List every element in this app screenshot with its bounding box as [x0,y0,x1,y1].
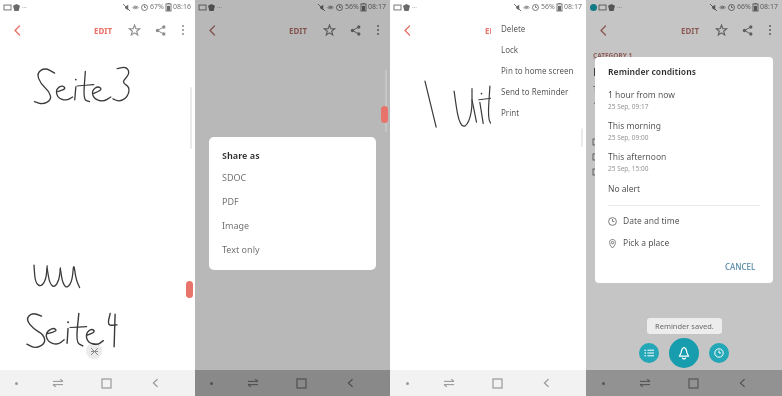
button[interactable]: EDIT [90,21,117,40]
staticText: 66% [737,2,751,12]
button[interactable]: This morning [608,117,760,148]
button[interactable]: Home [669,370,718,396]
button[interactable]: Back [393,16,421,44]
button[interactable]: Send to Reminder [491,81,583,102]
staticText: PDF [222,195,239,207]
button[interactable]: Back [3,16,31,44]
staticText: 56% [345,2,359,12]
button[interactable]: Pen settings [186,281,193,298]
staticText: 25 Sep, 09:00 [608,133,649,142]
button[interactable]: Delete [491,18,583,39]
staticText: T [593,84,598,95]
staticText: EDIT [681,25,700,36]
button[interactable]: Favourite [318,19,340,41]
staticText: Image [222,219,250,231]
staticText: 67% [150,2,164,12]
staticText: Pick a place [623,237,670,249]
staticText: Share as [222,149,260,161]
button[interactable]: EDIT [677,21,704,40]
button[interactable]: More options [368,20,388,40]
staticText: 08:17 [760,2,778,12]
staticText: 25 Sep, 09:17 [608,102,649,111]
button[interactable]: Pick a place [608,234,760,252]
button[interactable]: Indicator [0,370,33,396]
button[interactable]: Share [736,19,758,41]
staticText: Note 1 [593,64,628,79]
staticText: Send to Reminder [501,86,569,97]
button[interactable]: Favourite [514,19,536,41]
button[interactable]: Reminder [669,338,699,368]
button[interactable]: Favourite [710,19,732,41]
button[interactable]: Recents [620,370,669,396]
staticText: EDIT [94,25,113,36]
staticText: Text only [222,243,260,255]
staticText: This afternoon [608,151,667,163]
button[interactable]: Text only [209,237,376,261]
button[interactable]: Home [82,370,131,396]
button[interactable]: Pin to home screen [491,60,583,81]
staticText: EDIT [485,25,504,36]
staticText: SDOC [222,171,247,183]
staticText: No alert [608,183,641,195]
button[interactable]: List [639,343,659,363]
staticText: Date and time [623,215,680,227]
button[interactable]: Back [131,370,180,396]
button[interactable]: Recents [424,370,473,396]
button[interactable]: Lock [491,39,583,60]
button[interactable]: More options [760,20,780,40]
button[interactable]: Recents [33,370,82,396]
button[interactable]: Date and time [608,212,760,230]
button[interactable]: Indicator [390,370,424,396]
button[interactable]: No alert [608,179,760,199]
button[interactable]: Recents [228,370,277,396]
staticText: ··· [412,3,417,11]
staticText: 56% [541,2,555,12]
staticText: This morning [608,120,661,132]
button[interactable]: CANCEL [721,259,760,274]
button[interactable]: Home [473,370,522,396]
button[interactable]: PDF [209,189,376,213]
staticText: CATEGORY 1 [593,51,633,60]
button[interactable]: Pen settings [381,106,388,123]
staticText: Print [501,107,520,118]
staticText: 08:16 [173,2,191,12]
button[interactable]: Back [589,16,617,44]
button[interactable]: Home [277,370,326,396]
button[interactable]: Image [209,213,376,237]
button[interactable]: Alarm [709,343,729,363]
staticText: Lock [501,44,519,55]
button[interactable]: Favourite [123,19,145,41]
staticText: 1 hour from now [608,89,675,101]
button[interactable]: Indicator [195,370,228,396]
button[interactable]: Share [149,19,171,41]
button[interactable]: EDIT [285,21,312,40]
staticText: Reminder saved. [655,321,714,331]
button[interactable]: Back [718,370,767,396]
button[interactable]: This afternoon [608,148,760,179]
button[interactable]: Back [522,370,571,396]
staticText: Delete [501,23,526,34]
staticText: 08:17 [564,2,582,12]
staticText: CANCEL [725,261,756,272]
button[interactable]: More options [173,20,193,40]
staticText: ··· [22,3,27,11]
button[interactable]: Share [344,19,366,41]
staticText: Reminder conditions [608,66,696,78]
staticText: 1 [593,100,598,111]
staticText: 08:17 [368,2,386,12]
button[interactable]: Back [326,370,375,396]
button[interactable]: Print [491,102,583,123]
staticText: ··· [617,3,622,11]
button[interactable]: SDOC [209,165,376,189]
button[interactable]: 1 hour from now [608,86,760,117]
staticText: ··· [217,3,222,11]
staticText: Pin to home screen [501,65,574,76]
staticText: 25 Sep, 15:00 [608,164,649,173]
button[interactable]: Back [198,16,226,44]
button[interactable]: EDIT [481,21,508,40]
button[interactable]: Indicator [586,370,620,396]
staticText: EDIT [289,25,308,36]
